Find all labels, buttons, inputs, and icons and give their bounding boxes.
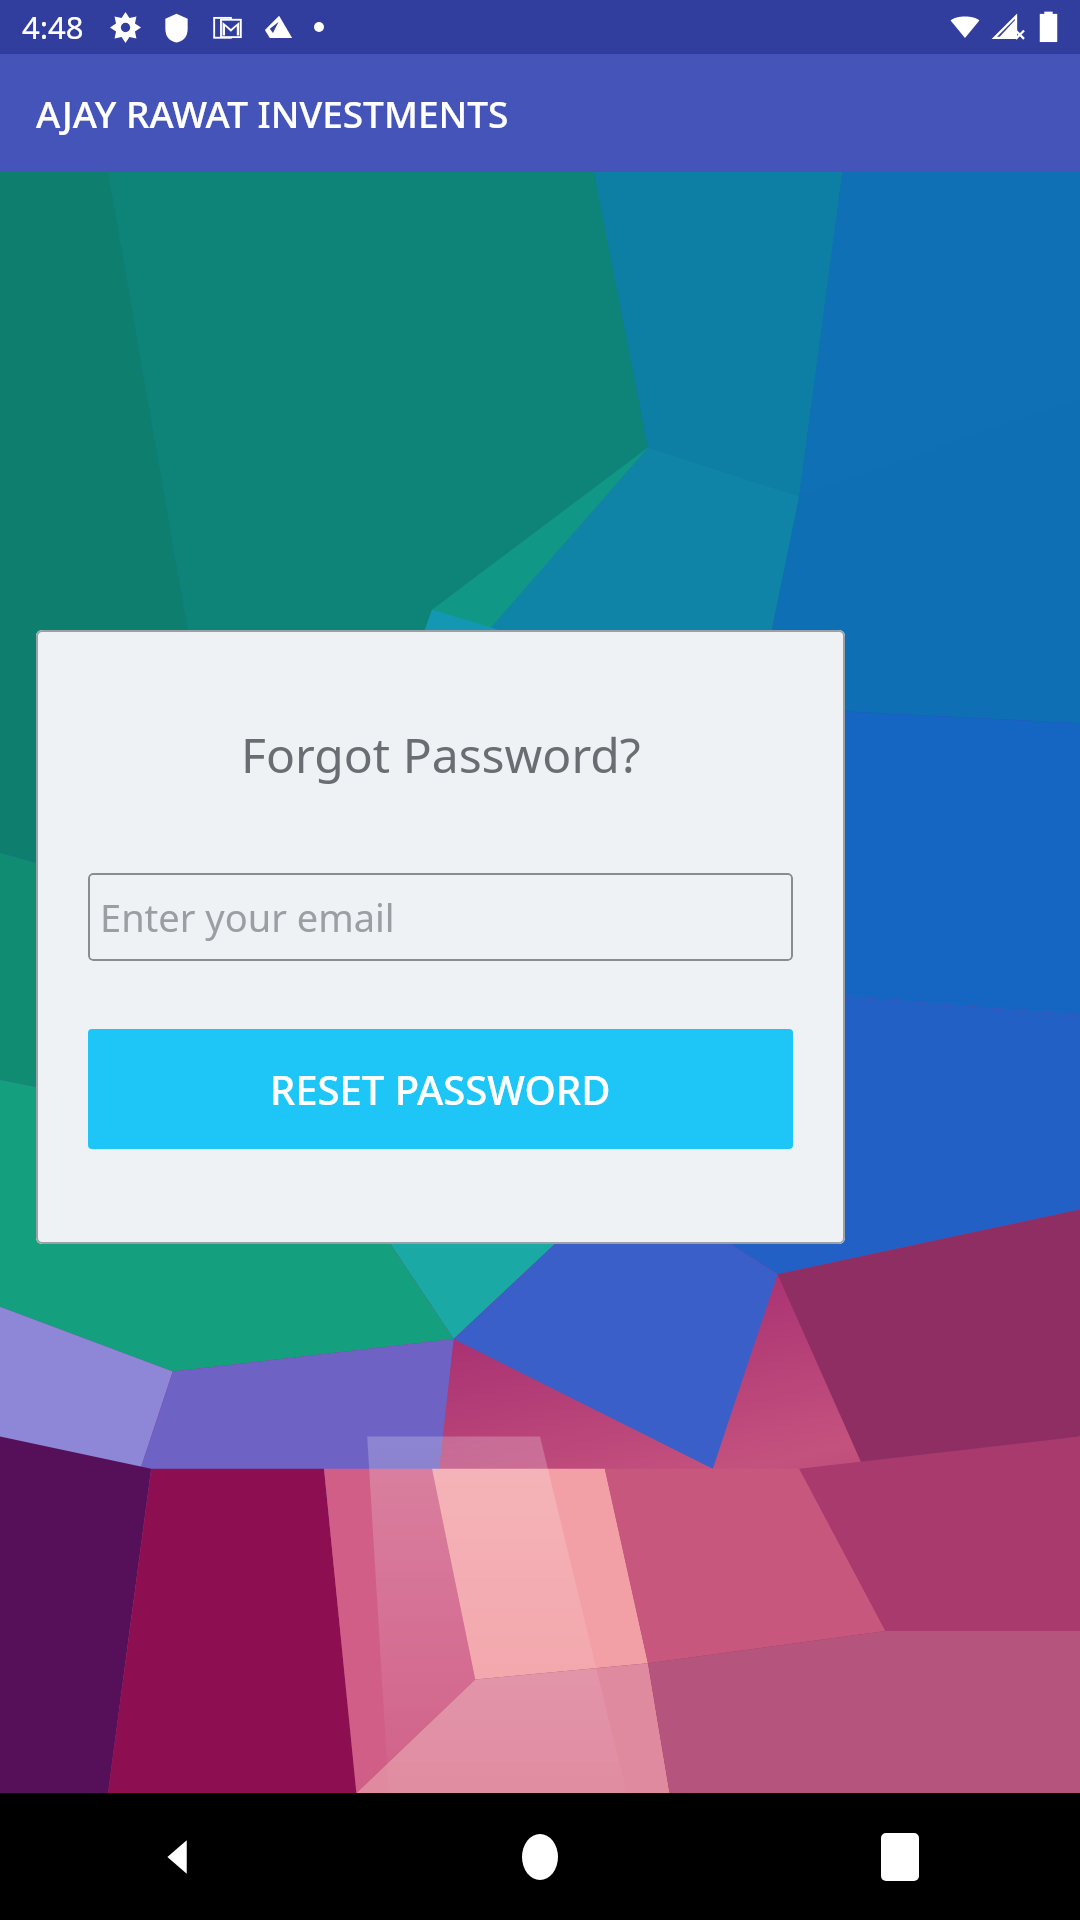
button[interactable]: RESET PASSWORD	[88, 1029, 793, 1149]
button[interactable]: Recent apps	[720, 1793, 1080, 1920]
staticText: Forgot Password?	[241, 722, 641, 787]
button[interactable]: Enter your email	[88, 873, 793, 961]
button[interactable]: Back	[0, 1793, 360, 1920]
staticText: 4:48	[22, 6, 84, 48]
staticText: RESET PASSWORD	[270, 1062, 611, 1116]
staticText: Enter your email	[100, 891, 395, 943]
staticText: AJAY RAWAT INVESTMENTS	[36, 88, 509, 138]
button[interactable]: Home	[360, 1793, 720, 1920]
